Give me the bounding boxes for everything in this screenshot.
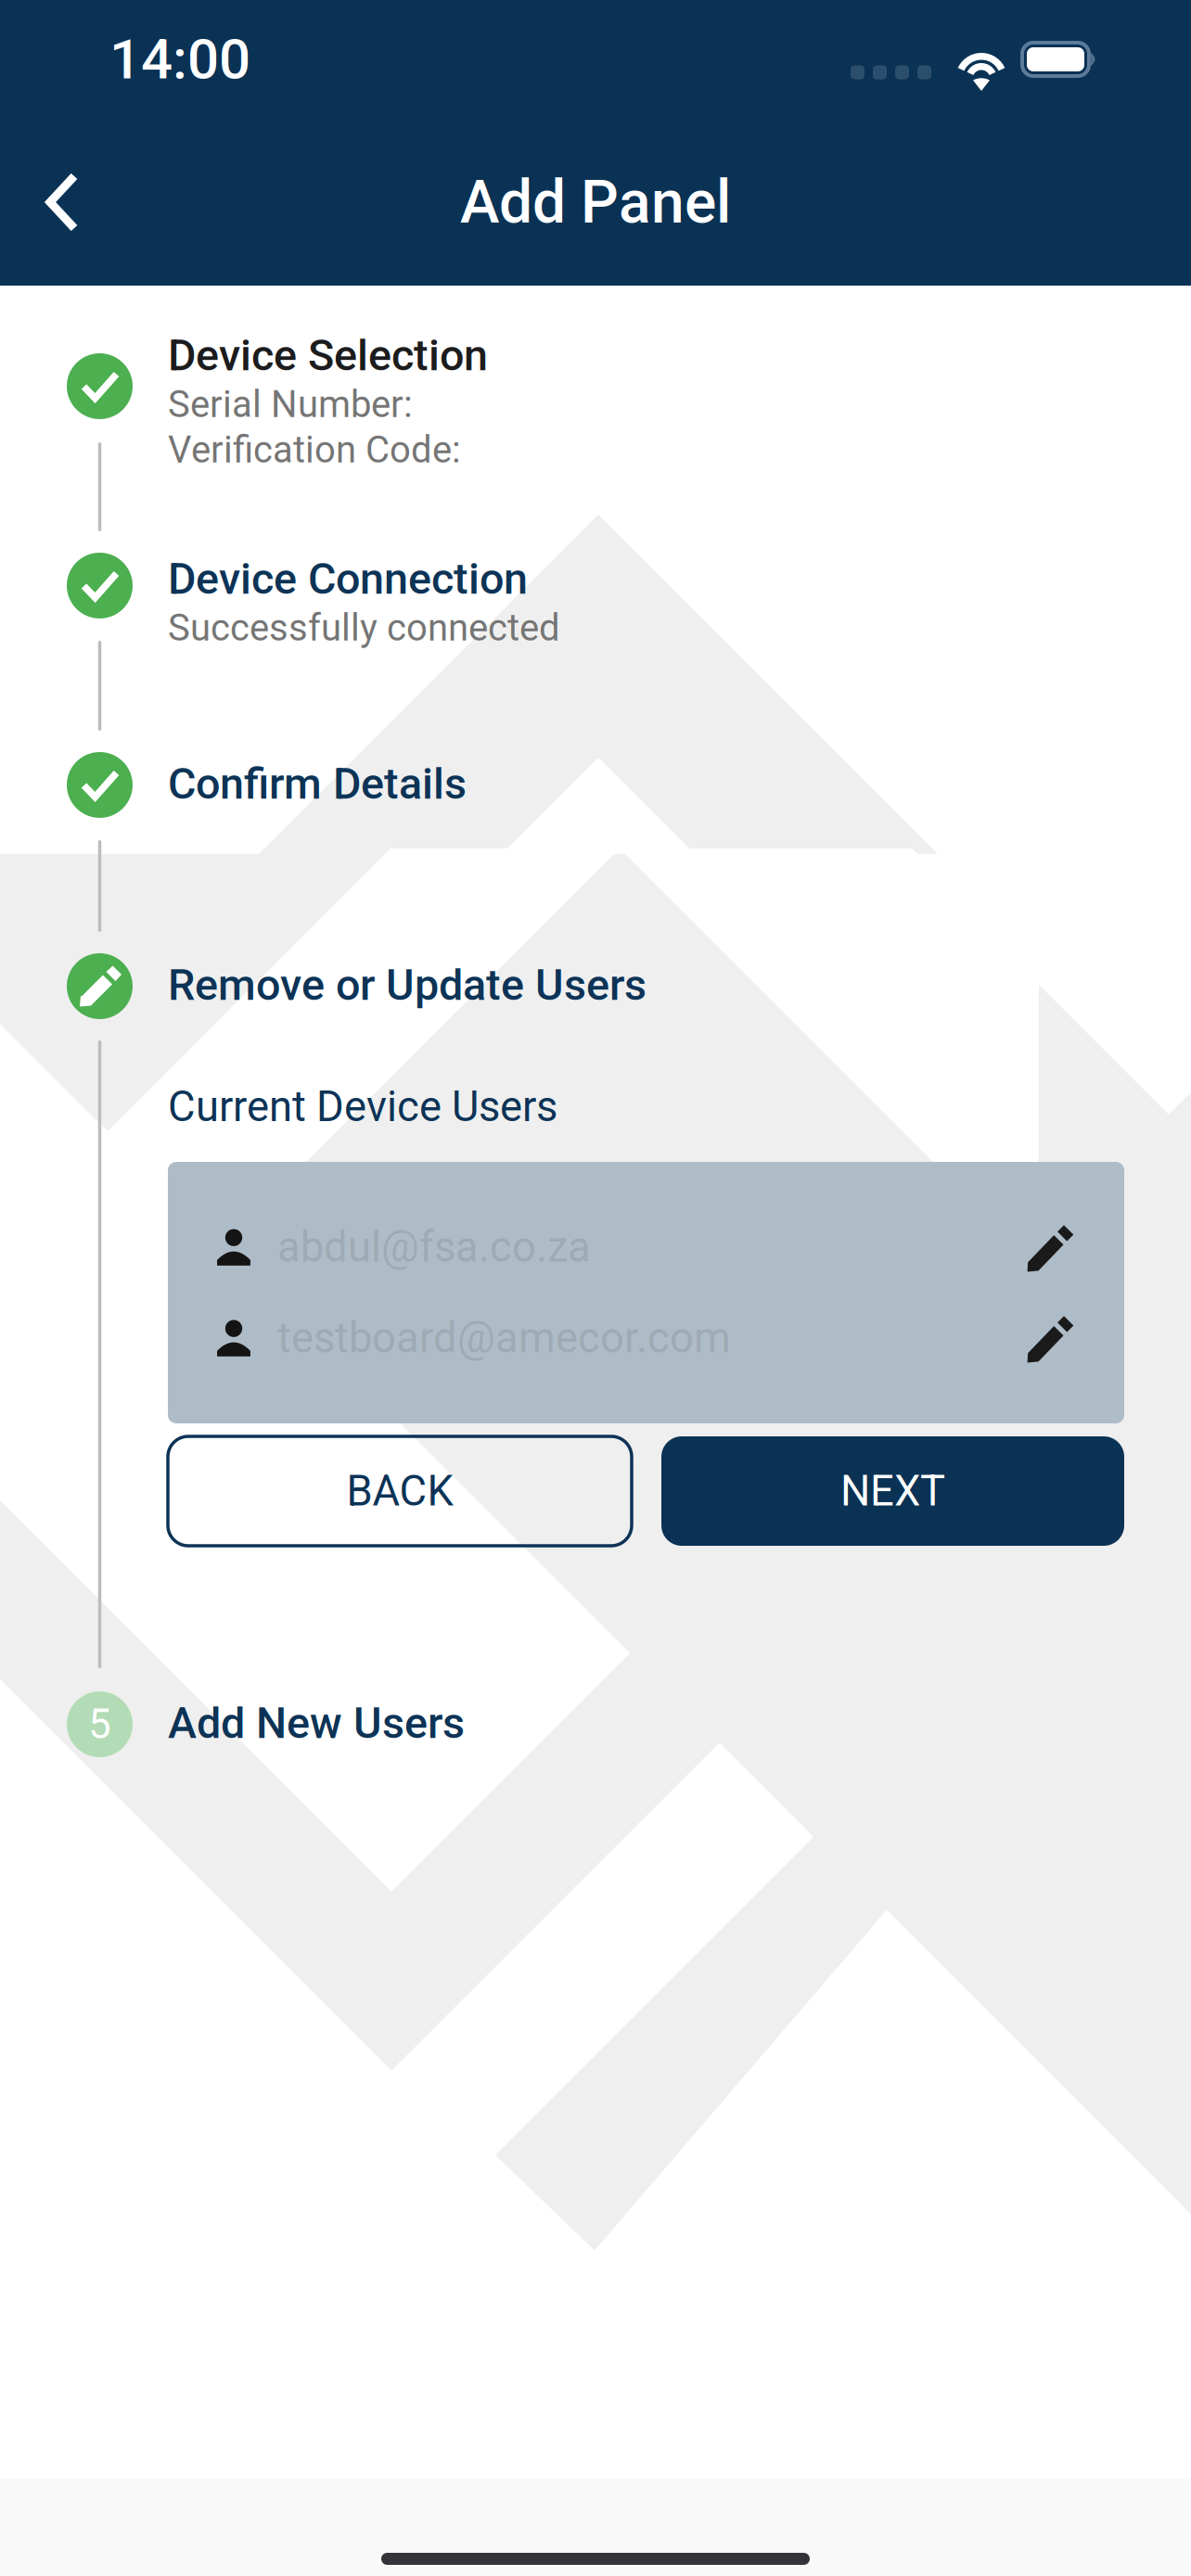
button[interactable]: Back [17,146,108,259]
staticText: 5 [88,1700,111,1748]
staticText: NEXT [840,1466,945,1516]
button[interactable]: BACK [168,1436,632,1546]
staticText: Confirm Details [168,759,467,809]
staticText: Device Selection [168,330,488,381]
staticText: Serial Number: [168,383,413,426]
staticText: Remove or Update Users [168,960,647,1010]
button[interactable]: Edit testboard@amecor.com [1017,1296,1085,1380]
button[interactable]: NEXT [661,1436,1124,1546]
staticText: abdul@fsa.co.za [277,1223,591,1272]
staticText: 14:00 [109,27,250,92]
staticText: testboard@amecor.com [277,1313,731,1363]
staticText: Successfully connected [168,606,560,650]
staticText: Device Connection [168,554,528,604]
button[interactable]: Edit abdul@fsa.co.za [1017,1205,1085,1289]
staticText: Verification Code: [168,428,461,472]
staticText: BACK [346,1466,453,1516]
staticText: Add New Users [168,1698,465,1749]
staticText: Add Panel [460,167,731,237]
staticText: Current Device Users [168,1082,557,1131]
